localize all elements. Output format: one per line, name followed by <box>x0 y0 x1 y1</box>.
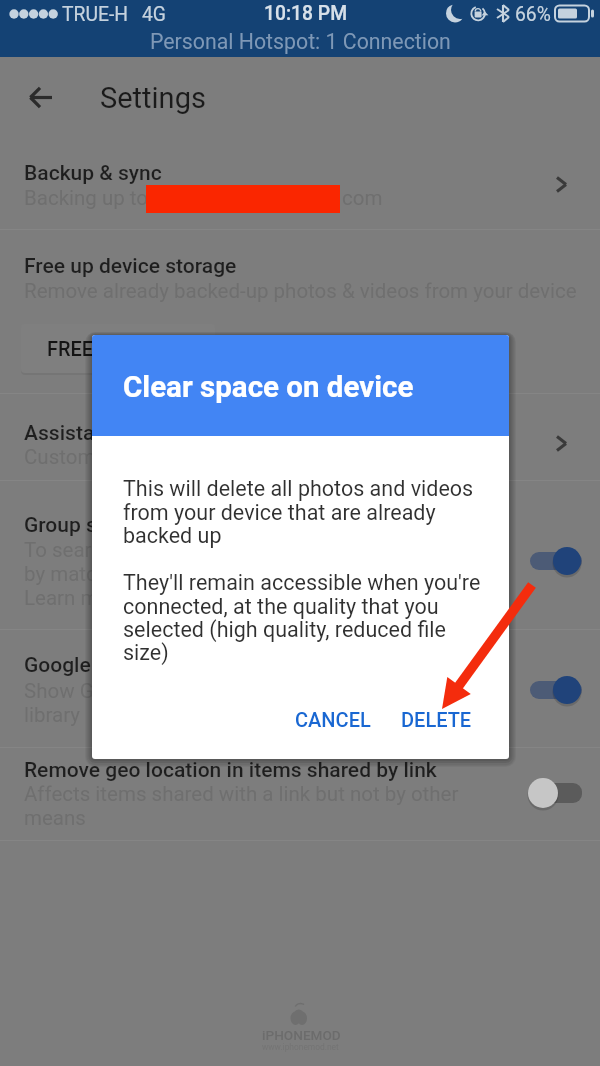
staticText: Backup & sync <box>24 161 162 186</box>
button[interactable]: Remove geo location in items shared by l… <box>0 748 600 840</box>
button[interactable]: Back <box>22 79 59 116</box>
button[interactable]: Group similar faces <box>0 481 600 629</box>
staticText: DELETE <box>401 708 472 731</box>
staticText: FREE UP SPACE <box>47 337 190 360</box>
staticText: iPHONEMOD <box>262 1027 341 1043</box>
staticText: Settings <box>100 81 206 115</box>
button[interactable]: Backup & sync <box>0 140 600 229</box>
staticText: CANCEL <box>295 708 371 731</box>
button[interactable]: Google Photos web & app <box>0 630 600 747</box>
button[interactable]: Toggle setting <box>528 672 584 708</box>
staticText: Backing up to <box>24 186 149 210</box>
button[interactable]: FREE UP SPACE <box>21 324 215 373</box>
staticText: Show Google Drive photos & videos in you… <box>24 679 483 727</box>
staticText: Assistant cards <box>24 421 171 446</box>
button[interactable]: Toggle setting <box>528 543 584 579</box>
staticText: Customize your Assistant cards <box>24 445 313 469</box>
button[interactable]: Toggle setting <box>528 775 584 811</box>
button[interactable]: Assistant cards <box>0 394 600 480</box>
staticText: Google Photos web & app <box>24 653 266 678</box>
button[interactable]: DELETE <box>387 697 486 741</box>
staticText: Affects items shared with a link but not… <box>24 782 459 830</box>
staticText: 10:18 PM <box>264 2 348 25</box>
staticText: Clear space on device <box>123 370 414 405</box>
button[interactable]: CANCEL <box>279 697 386 741</box>
staticText: 66% <box>515 3 551 26</box>
staticText: com <box>342 186 383 210</box>
staticText: Remove geo location in items shared by l… <box>24 758 437 783</box>
staticText: Group similar faces <box>24 513 208 538</box>
staticText: They'll remain accessible when you're co… <box>123 570 481 665</box>
staticText: TRUE-H <box>62 3 128 26</box>
staticText: To search your photos by people in them … <box>24 538 393 610</box>
staticText: Remove already backed-up photos & videos… <box>24 279 577 303</box>
staticText: Free up device storage <box>24 254 237 279</box>
staticText: 4G <box>142 3 166 26</box>
staticText: This will delete all photos and videos f… <box>123 476 474 548</box>
staticText: Personal Hotspot: 1 Connection <box>150 29 451 54</box>
